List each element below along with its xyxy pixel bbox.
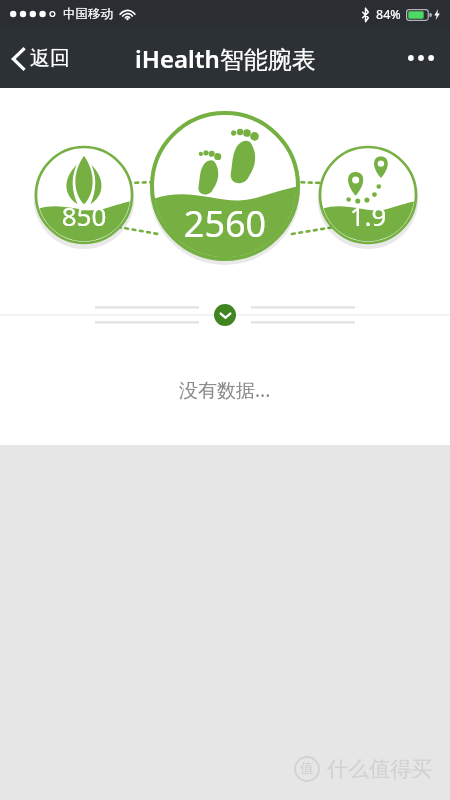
staticText: 84% [376,6,401,23]
button[interactable]: Expand [214,304,236,326]
staticText: iHealth智能腕表 [135,42,316,75]
button[interactable]: 返回 [0,36,84,81]
staticText: 没有数据... [179,377,271,403]
staticText: 值 [300,760,314,778]
staticText: 中国移动 [63,6,113,22]
staticText: 1.9 [336,198,400,233]
staticText: 返回 [30,46,70,71]
staticText: 850 [52,198,116,233]
button[interactable]: More options [392,37,450,79]
staticText: 什么值得买 [327,756,432,782]
staticText: 2560 [179,199,271,248]
